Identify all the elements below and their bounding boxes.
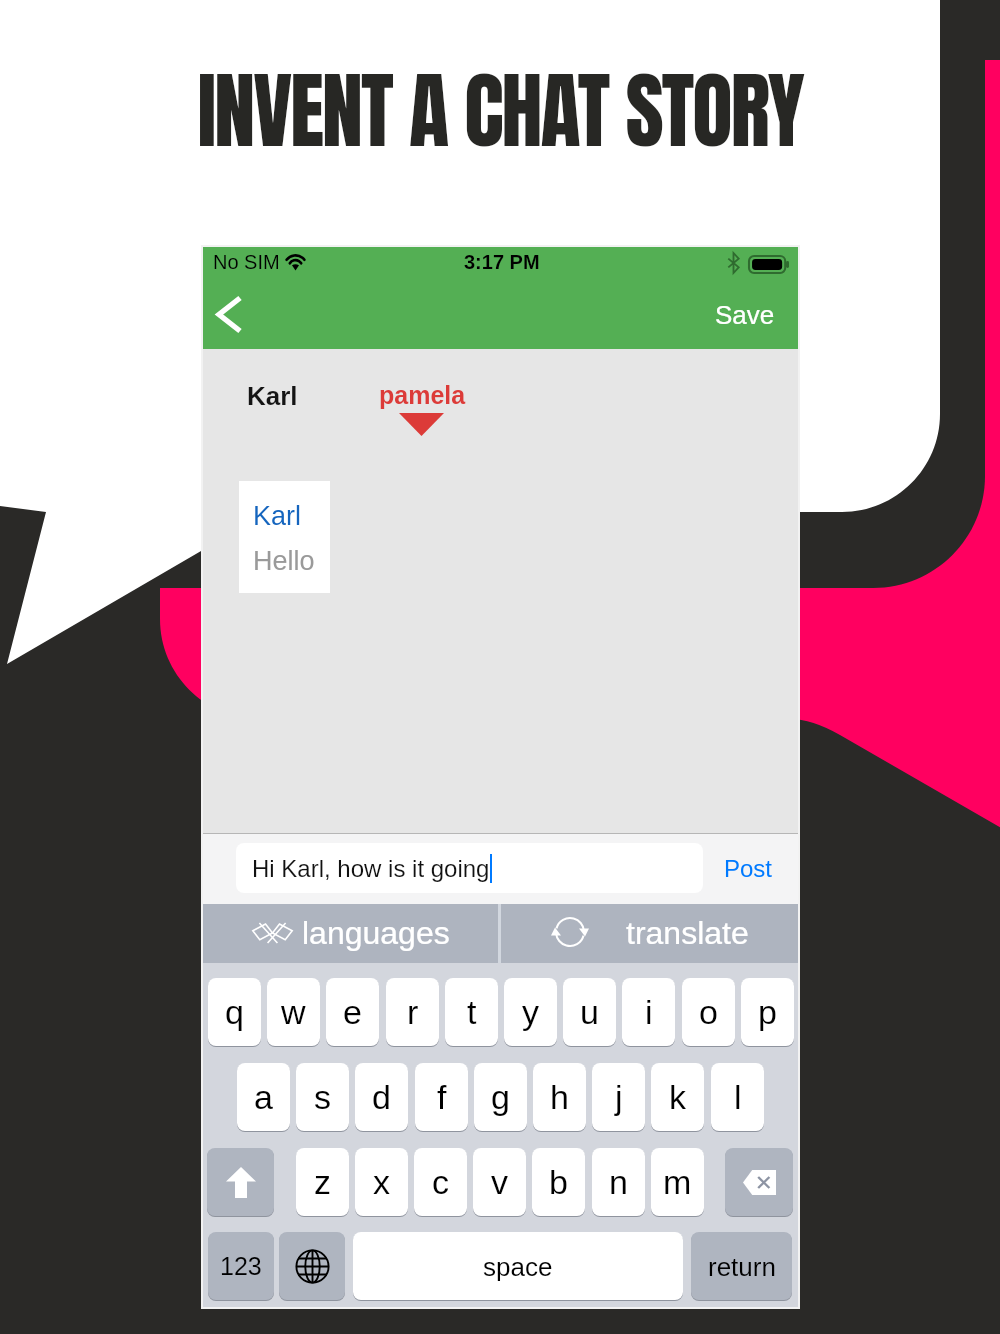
staticText: p	[758, 993, 777, 1031]
button[interactable]: Karl	[247, 381, 298, 410]
button[interactable]: b	[532, 1148, 585, 1216]
staticText: j	[615, 1078, 623, 1116]
button[interactable]: t	[445, 978, 498, 1046]
staticText: a	[254, 1078, 273, 1116]
button[interactable]: d	[355, 1063, 408, 1131]
staticText: b	[549, 1163, 568, 1201]
staticText: languages	[302, 915, 450, 951]
button[interactable]: return	[691, 1232, 792, 1300]
staticText: space	[483, 1252, 553, 1281]
staticText: 123	[220, 1252, 262, 1280]
staticText: w	[281, 993, 306, 1031]
button[interactable]: Hi Karl, how is it going	[236, 843, 703, 893]
staticText: l	[734, 1078, 742, 1116]
button[interactable]: c	[414, 1148, 467, 1216]
button[interactable]: Save	[703, 289, 787, 339]
staticText: return	[708, 1252, 776, 1281]
staticText: c	[432, 1163, 449, 1201]
button[interactable]: x	[355, 1148, 408, 1216]
staticText: i	[645, 993, 653, 1031]
staticText: n	[609, 1163, 628, 1201]
button[interactable]: n	[592, 1148, 645, 1216]
staticText: m	[663, 1163, 692, 1201]
staticText: Save	[715, 300, 775, 329]
staticText: t	[467, 993, 477, 1031]
button[interactable]: languages	[203, 904, 499, 963]
button[interactable]: translate	[501, 904, 798, 963]
button[interactable]: e	[326, 978, 379, 1046]
staticText: g	[491, 1078, 510, 1116]
staticText: v	[491, 1163, 508, 1201]
staticText: x	[373, 1163, 390, 1201]
button[interactable]: i	[622, 978, 675, 1046]
button[interactable]: space	[353, 1232, 683, 1300]
staticText: e	[343, 993, 362, 1031]
button[interactable]: h	[533, 1063, 586, 1131]
button[interactable]: Numbers	[208, 1232, 274, 1300]
button[interactable]: Backspace	[725, 1148, 793, 1216]
staticText: h	[550, 1078, 569, 1116]
button[interactable]: Karl	[239, 481, 330, 593]
staticText: o	[699, 993, 718, 1031]
staticText: r	[407, 993, 419, 1031]
staticText: k	[669, 1078, 686, 1116]
button[interactable]: w	[267, 978, 320, 1046]
button[interactable]: r	[386, 978, 439, 1046]
staticText: s	[314, 1078, 331, 1116]
button[interactable]: o	[682, 978, 735, 1046]
button[interactable]: Switch keyboard	[279, 1232, 345, 1300]
staticText: pamela	[379, 381, 466, 409]
button[interactable]: k	[651, 1063, 704, 1131]
button[interactable]: Post	[713, 843, 783, 893]
button[interactable]: z	[296, 1148, 349, 1216]
staticText: Karl	[253, 501, 302, 531]
button[interactable]: q	[208, 978, 261, 1046]
staticText: INVENT A CHAT STORY	[0, 48, 1000, 173]
staticText: d	[372, 1078, 391, 1116]
staticText: 3:17 PM	[464, 251, 540, 273]
staticText: q	[225, 993, 244, 1031]
staticText: Hi Karl, how is it going	[252, 855, 490, 882]
button[interactable]: y	[504, 978, 557, 1046]
button[interactable]: m	[651, 1148, 704, 1216]
staticText: Post	[724, 855, 773, 882]
staticText: No SIM	[213, 251, 280, 273]
button[interactable]: l	[711, 1063, 764, 1131]
button[interactable]: g	[474, 1063, 527, 1131]
button[interactable]: Shift	[207, 1148, 274, 1216]
button[interactable]: j	[592, 1063, 645, 1131]
button[interactable]: Back	[205, 287, 261, 341]
staticText: y	[522, 993, 539, 1031]
staticText: u	[580, 993, 599, 1031]
staticText: Hello	[253, 546, 315, 576]
staticText: f	[437, 1078, 447, 1116]
button[interactable]: a	[237, 1063, 290, 1131]
button[interactable]: v	[473, 1148, 526, 1216]
staticText: translate	[626, 915, 749, 951]
button[interactable]: p	[741, 978, 794, 1046]
button[interactable]: s	[296, 1063, 349, 1131]
button[interactable]: f	[415, 1063, 468, 1131]
button[interactable]: u	[563, 978, 616, 1046]
staticText: z	[314, 1163, 331, 1201]
